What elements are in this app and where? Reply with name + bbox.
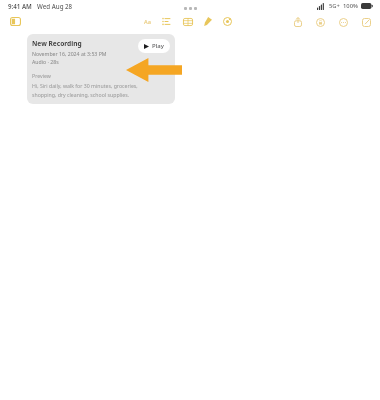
staticText: Wed Aug 28 — [37, 2, 73, 10]
button[interactable]: Table — [182, 17, 194, 27]
button[interactable]: Share — [293, 16, 303, 28]
button[interactable]: Text format — [143, 17, 152, 27]
staticText: Audio · 28s — [32, 58, 59, 65]
button[interactable]: More options — [338, 17, 349, 28]
button[interactable]: Attach media — [222, 16, 233, 27]
staticText: Preview — [32, 72, 51, 79]
button[interactable]: Lock note — [315, 17, 326, 28]
other: Annotation arrow pointing to recording c… — [126, 58, 182, 82]
staticText: 100% — [343, 2, 358, 10]
button[interactable]: Play — [138, 39, 170, 53]
button[interactable]: Markup — [203, 16, 213, 27]
staticText: Play — [152, 42, 164, 50]
button[interactable]: Checklist — [161, 16, 173, 27]
staticText: Aa — [144, 18, 151, 26]
staticText: November 16, 2024 at 3:53 PM — [32, 50, 107, 57]
button[interactable]: New note — [361, 17, 372, 28]
button[interactable]: Show sidebar — [8, 15, 23, 28]
staticText: Hi, Siri daily, walk for 30 minutes, gro… — [32, 82, 138, 89]
staticText: 9:41 AM — [8, 2, 32, 10]
button[interactable]: New Recording — [27, 34, 175, 104]
staticText: New Recording — [32, 39, 82, 48]
staticText: 5G+ — [329, 2, 340, 10]
button[interactable]: Multitasking options — [178, 4, 203, 13]
staticText: shopping, dry cleaning, school supplies. — [32, 91, 130, 98]
